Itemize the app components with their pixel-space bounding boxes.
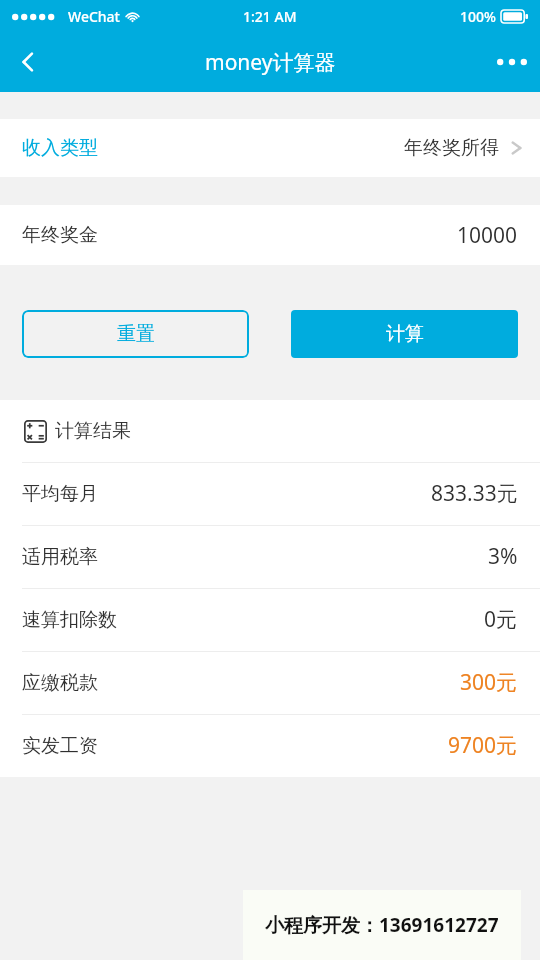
staticText: 10000 (457, 221, 518, 250)
staticText: 适用税率 (22, 545, 98, 569)
staticText: WeChat (68, 7, 120, 26)
staticText: 小程序开发：13691612727 (265, 912, 499, 938)
staticText: 重置 (117, 322, 155, 346)
button[interactable]: Back (0, 34, 56, 90)
button[interactable]: 计算 (291, 310, 518, 358)
staticText: money计算器 (205, 48, 336, 77)
button[interactable]: 平均每月 (0, 462, 540, 525)
button[interactable]: 实发工资 (0, 714, 540, 777)
button[interactable]: 应缴税款 (0, 651, 540, 714)
button[interactable]: 适用税率 (0, 525, 540, 588)
staticText: 833.33元 (431, 479, 518, 508)
staticText: 0元 (484, 605, 518, 634)
button[interactable]: 小程序开发：13691612727 (243, 890, 521, 960)
staticText: 3% (488, 542, 518, 571)
staticText: 300元 (460, 668, 518, 697)
staticText: 计算结果 (55, 419, 131, 443)
staticText: 计算 (386, 322, 424, 346)
staticText: 1:21 AM (243, 7, 297, 26)
button[interactable]: 重置 (22, 310, 249, 358)
button[interactable]: More options (484, 34, 540, 90)
staticText: 年终奖所得 (404, 136, 499, 160)
button[interactable]: 速算扣除数 (0, 588, 540, 651)
button[interactable]: 年终奖金 (0, 205, 540, 265)
staticText: 速算扣除数 (22, 608, 117, 632)
staticText: 收入类型 (22, 136, 98, 160)
staticText: 100% (460, 7, 496, 26)
staticText: 实发工资 (22, 734, 98, 758)
staticText: 9700元 (448, 731, 518, 760)
staticText: 应缴税款 (22, 671, 98, 695)
staticText: 年终奖金 (22, 223, 98, 247)
staticText: 平均每月 (22, 482, 98, 506)
button[interactable]: 收入类型 (0, 119, 540, 177)
